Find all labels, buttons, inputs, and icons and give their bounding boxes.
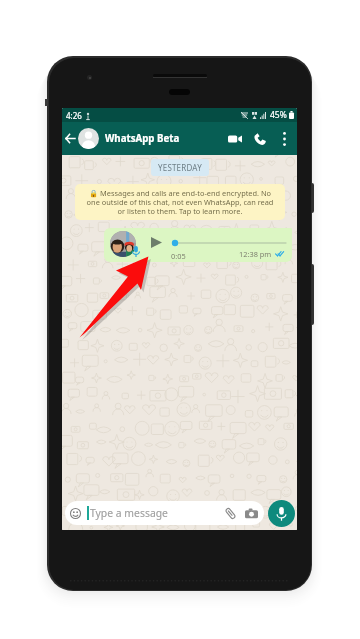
button[interactable]: Video call — [222, 122, 247, 155]
staticText: 🔒 Messages and calls are end-to-end encr… — [82, 188, 278, 216]
staticText: 0:05 — [171, 251, 186, 261]
staticText: 12:38 pm — [239, 249, 272, 259]
staticText: YESTERDAY — [158, 162, 202, 173]
button[interactable]: 0:05 — [104, 228, 292, 262]
staticText: WhatsApp Beta — [105, 132, 180, 145]
other: Attach — [224, 507, 237, 520]
other: Camera — [245, 508, 258, 519]
staticText: Type a message — [90, 506, 168, 520]
button[interactable]: More options — [272, 122, 297, 155]
staticText: 4:26 — [66, 110, 82, 121]
button[interactable]: Back — [62, 122, 78, 155]
button[interactable]: Emoji — [65, 501, 264, 525]
button[interactable]: WhatsApp Beta — [78, 122, 180, 155]
button[interactable]: Call — [247, 122, 272, 155]
other: Emoji — [70, 508, 81, 519]
button[interactable]: 🔒 Messages and calls are end-to-end encr… — [75, 184, 285, 220]
button[interactable]: Record voice message — [268, 500, 295, 527]
staticText: 45% — [270, 109, 287, 121]
